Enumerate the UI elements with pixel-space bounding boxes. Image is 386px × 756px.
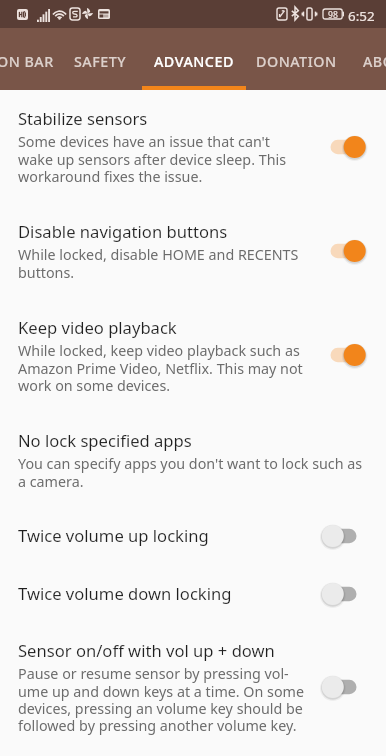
staticText: Twice volume down locking bbox=[18, 582, 232, 605]
staticText: SAFETY bbox=[74, 52, 127, 71]
staticText: ADVANCED bbox=[154, 52, 234, 71]
staticText: Keep video playback bbox=[18, 316, 177, 339]
button[interactable]: Stabilize sensors bbox=[18, 107, 306, 130]
staticText: Stabilize sensors bbox=[18, 107, 148, 130]
staticText: Sensor on/off with vol up + down bbox=[18, 639, 275, 662]
staticText: No lock specified apps bbox=[18, 429, 192, 452]
staticText: Pause or resume sensor by pressing vol-u… bbox=[18, 664, 306, 735]
staticText: ABOUT bbox=[363, 52, 386, 71]
button[interactable]: Keep video playback bbox=[18, 316, 306, 339]
button[interactable]: ADVANCED bbox=[142, 28, 246, 90]
staticText: ON BAR bbox=[0, 52, 54, 71]
button[interactable]: Disabled switch: Sensor on/off with vol … bbox=[314, 667, 372, 707]
staticText: Twice volume up locking bbox=[18, 524, 209, 547]
staticText: Some devices have an issue that can't wa… bbox=[18, 132, 306, 186]
staticText: While locked, keep video playback such a… bbox=[18, 341, 306, 395]
button[interactable]: DONATION bbox=[246, 28, 346, 90]
button[interactable]: Disabled switch: Twice volume up locking bbox=[314, 516, 372, 556]
button[interactable]: Enabled switch: Keep video playback bbox=[314, 335, 372, 375]
button[interactable]: ON BAR bbox=[0, 28, 61, 90]
staticText: You can specify apps you don't want to l… bbox=[18, 454, 370, 491]
button[interactable]: Enabled switch: Disable navigation butto… bbox=[314, 231, 372, 271]
staticText: DONATION bbox=[256, 52, 337, 71]
button[interactable]: Twice volume down locking bbox=[18, 582, 306, 605]
button[interactable]: ABOUT bbox=[349, 28, 386, 90]
button[interactable]: Disabled switch: Twice volume down locki… bbox=[314, 574, 372, 614]
staticText: 6:52 bbox=[348, 7, 375, 25]
button[interactable]: Enabled switch: Stabilize sensors bbox=[314, 127, 372, 167]
button[interactable]: Sensor on/off with vol up + down bbox=[18, 639, 306, 662]
staticText: 98 bbox=[328, 9, 338, 19]
staticText: Disable navigation buttons bbox=[18, 220, 228, 243]
button[interactable]: Twice volume up locking bbox=[18, 524, 306, 547]
staticText: While locked, disable HOME and RECENTS b… bbox=[18, 245, 306, 282]
button[interactable]: SAFETY bbox=[61, 28, 139, 90]
button[interactable]: No lock specified apps bbox=[18, 429, 370, 452]
button[interactable]: Disable navigation buttons bbox=[18, 220, 306, 243]
